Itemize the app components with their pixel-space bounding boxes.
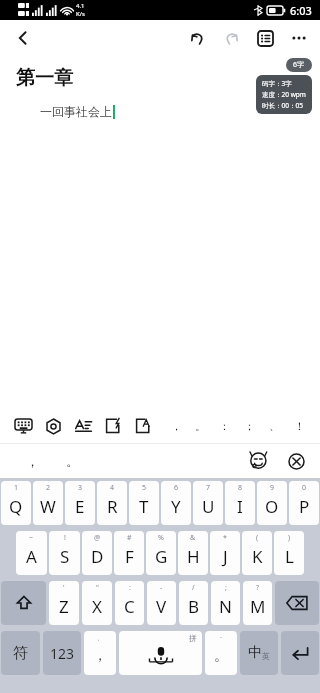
button[interactable]: 6	[161, 481, 191, 525]
button[interactable]: @	[82, 531, 112, 575]
staticText: ，	[93, 647, 107, 665]
staticText: 第一章	[16, 66, 73, 90]
staticText: 5	[142, 483, 147, 493]
button[interactable]: Emoji	[242, 445, 274, 477]
staticText: ;	[225, 583, 227, 593]
staticText: ：	[219, 419, 230, 433]
button[interactable]: )	[274, 531, 304, 575]
button[interactable]: Voice	[38, 409, 68, 443]
staticText: ；	[244, 419, 255, 433]
button[interactable]: 9	[257, 481, 287, 525]
button[interactable]: ·	[205, 631, 237, 675]
staticText: ?	[256, 583, 260, 593]
button[interactable]: Enter	[281, 631, 319, 675]
button[interactable]: 码字：3字	[256, 75, 312, 114]
staticText: R	[107, 495, 118, 518]
staticText: !	[64, 533, 66, 543]
staticText: &	[190, 533, 196, 543]
staticText: 8	[238, 483, 243, 493]
staticText: E	[75, 495, 85, 518]
button[interactable]: *	[210, 531, 240, 575]
button[interactable]: Keyboard	[8, 409, 38, 443]
staticText: ，	[171, 419, 182, 433]
button[interactable]: 3	[65, 481, 95, 525]
button[interactable]: ，	[12, 444, 52, 478]
button[interactable]: /	[179, 581, 208, 625]
staticText: 6	[174, 483, 179, 493]
button[interactable]: &	[178, 531, 208, 575]
staticText: -	[160, 583, 163, 593]
staticText: 6字	[293, 60, 305, 70]
staticText: 时长：00：05	[262, 101, 303, 110]
button[interactable]: Scan	[128, 409, 158, 443]
button[interactable]: 中	[240, 631, 278, 675]
button[interactable]: 。	[52, 444, 92, 478]
staticText: 。	[214, 647, 228, 665]
staticText: M	[250, 595, 266, 618]
button[interactable]: Close	[280, 445, 312, 477]
button[interactable]: #	[114, 531, 144, 575]
button[interactable]: Insert	[98, 409, 128, 443]
button[interactable]: More options	[282, 21, 316, 55]
button[interactable]: ；	[237, 409, 262, 443]
button[interactable]: :	[115, 581, 144, 625]
button[interactable]: Shift	[1, 581, 46, 625]
staticText: 3	[78, 483, 83, 493]
staticText: 。	[195, 419, 206, 433]
staticText: 4.1	[76, 2, 85, 10]
button[interactable]: 、	[262, 409, 287, 443]
staticText: P	[299, 495, 310, 518]
staticText: B	[188, 595, 200, 618]
staticText: T	[139, 495, 149, 518]
button[interactable]: ：	[212, 409, 237, 443]
button[interactable]: 0	[289, 481, 319, 525]
staticText: 1	[14, 483, 19, 493]
staticText: @	[94, 533, 101, 543]
staticText: '	[63, 583, 65, 593]
staticText: ，	[26, 453, 39, 469]
button[interactable]: 1	[1, 481, 31, 525]
button[interactable]: Back	[6, 21, 40, 55]
button[interactable]: 7	[193, 481, 223, 525]
button[interactable]: 8	[225, 481, 255, 525]
button[interactable]: 123	[43, 631, 81, 675]
staticText: 速度：20 wpm	[262, 90, 306, 99]
staticText: 。	[66, 453, 79, 469]
button[interactable]: 。	[188, 409, 212, 443]
button[interactable]: ，	[164, 409, 188, 443]
button[interactable]: 、	[84, 631, 116, 675]
button[interactable]: 5	[129, 481, 159, 525]
button[interactable]: Undo	[180, 21, 214, 55]
button[interactable]: Delete	[275, 581, 319, 625]
button[interactable]: ！	[287, 409, 312, 443]
staticText: J	[223, 545, 228, 568]
button[interactable]: ~	[16, 531, 47, 575]
button[interactable]: "	[82, 581, 112, 625]
button[interactable]: 符	[1, 631, 40, 675]
button[interactable]: Redo	[214, 21, 248, 55]
staticText: 、	[97, 633, 104, 642]
button[interactable]: (	[242, 531, 272, 575]
button[interactable]: 4	[97, 481, 127, 525]
staticText: 拼	[189, 633, 197, 643]
button[interactable]: Outline	[248, 21, 282, 55]
button[interactable]: %	[146, 531, 176, 575]
button[interactable]: !	[49, 531, 80, 575]
staticText: ！	[294, 419, 305, 433]
staticText: #	[127, 533, 132, 543]
button[interactable]: Space, voice input	[119, 631, 202, 675]
staticText: ·	[220, 633, 222, 643]
staticText: C	[124, 595, 135, 618]
staticText: 码字：3字	[262, 79, 292, 88]
staticText: X	[92, 595, 102, 618]
button[interactable]: 2	[33, 481, 63, 525]
button[interactable]: ?	[243, 581, 272, 625]
staticText: 英	[262, 651, 270, 661]
button[interactable]: ;	[211, 581, 240, 625]
button[interactable]: Text format	[68, 409, 98, 443]
button[interactable]: '	[49, 581, 79, 625]
staticText: 2	[46, 483, 51, 493]
staticText: H	[187, 545, 200, 568]
button[interactable]: -	[147, 581, 176, 625]
button[interactable]: 6字	[286, 58, 312, 72]
